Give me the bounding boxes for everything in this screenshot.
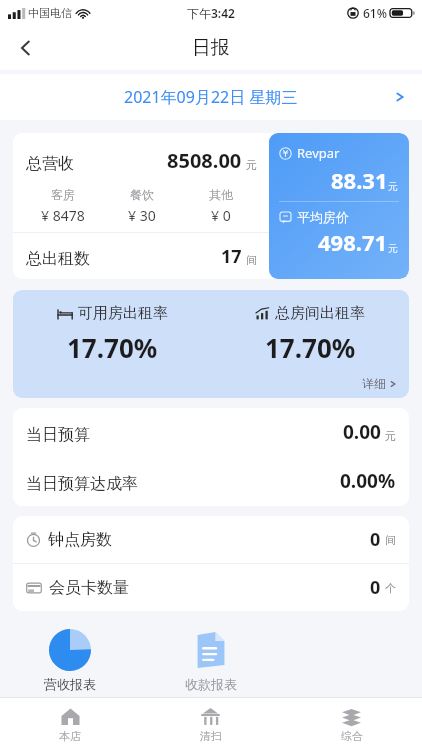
- staticText: 其他: [209, 187, 233, 202]
- staticText: 0.00%: [340, 468, 396, 494]
- staticText: 客房: [51, 187, 75, 202]
- staticText: 间: [385, 533, 396, 547]
- staticText: Revpar: [297, 144, 340, 162]
- staticText: 平均房价: [297, 209, 349, 225]
- staticText: 本店: [59, 729, 81, 743]
- button[interactable]: 营收报表: [0, 623, 140, 692]
- staticText: 17: [221, 244, 242, 269]
- staticText: 88.31: [331, 165, 388, 195]
- button[interactable]: Revpar: [269, 133, 409, 279]
- staticText: ¥ 8478: [41, 206, 85, 225]
- staticText: 17.70%: [67, 330, 158, 365]
- button[interactable]: 会员卡数量: [13, 564, 409, 611]
- staticText: 8508.00: [167, 147, 242, 174]
- button[interactable]: 本店: [0, 698, 140, 750]
- staticText: 可用房出租率: [78, 304, 168, 323]
- staticText: 收款报表: [185, 676, 237, 692]
- staticText: 总房间出租率: [275, 304, 365, 323]
- staticText: 清扫: [200, 729, 222, 743]
- staticText: 间: [246, 253, 257, 267]
- staticText: 下午3:42: [187, 5, 235, 21]
- staticText: 元: [385, 429, 396, 443]
- button[interactable]: 返回: [6, 28, 46, 68]
- staticText: 营收报表: [44, 676, 96, 692]
- button[interactable]: 当日预算: [13, 408, 409, 456]
- button[interactable]: 钟点房数: [13, 516, 409, 563]
- staticText: 当日预算达成率: [26, 474, 138, 494]
- staticText: 2021年09月22日 星期三: [124, 86, 298, 108]
- staticText: 元: [388, 180, 398, 193]
- staticText: 0: [370, 527, 381, 552]
- staticText: 会员卡数量: [49, 578, 129, 598]
- staticText: 综合: [341, 729, 363, 743]
- staticText: 餐饮: [130, 187, 154, 202]
- staticText: 中国电信: [28, 6, 72, 20]
- staticText: 61%: [363, 5, 387, 21]
- button[interactable]: 详细: [362, 376, 397, 391]
- button[interactable]: 可用房出租率: [13, 290, 409, 398]
- button[interactable]: 综合: [281, 698, 422, 750]
- staticText: 0.00: [343, 419, 381, 445]
- button[interactable]: 清扫: [140, 698, 281, 750]
- staticText: ¥ 0: [211, 206, 231, 225]
- staticText: 元: [388, 242, 398, 255]
- staticText: 0: [370, 575, 381, 600]
- button[interactable]: 2021年09月22日 星期三: [0, 74, 422, 120]
- staticText: 钟点房数: [48, 530, 112, 550]
- staticText: 498.71: [318, 227, 388, 257]
- staticText: 元: [246, 158, 257, 172]
- button[interactable]: 当日预算达成率: [13, 456, 409, 506]
- staticText: 详细: [362, 376, 386, 391]
- staticText: 个: [385, 581, 396, 595]
- staticText: 当日预算: [26, 425, 90, 445]
- staticText: 17.70%: [265, 330, 356, 365]
- staticText: 总出租数: [26, 249, 90, 269]
- button[interactable]: 收款报表: [140, 623, 281, 692]
- staticText: ¥ 30: [128, 206, 156, 225]
- staticText: 总营收: [26, 154, 74, 174]
- staticText: 日报: [192, 36, 230, 60]
